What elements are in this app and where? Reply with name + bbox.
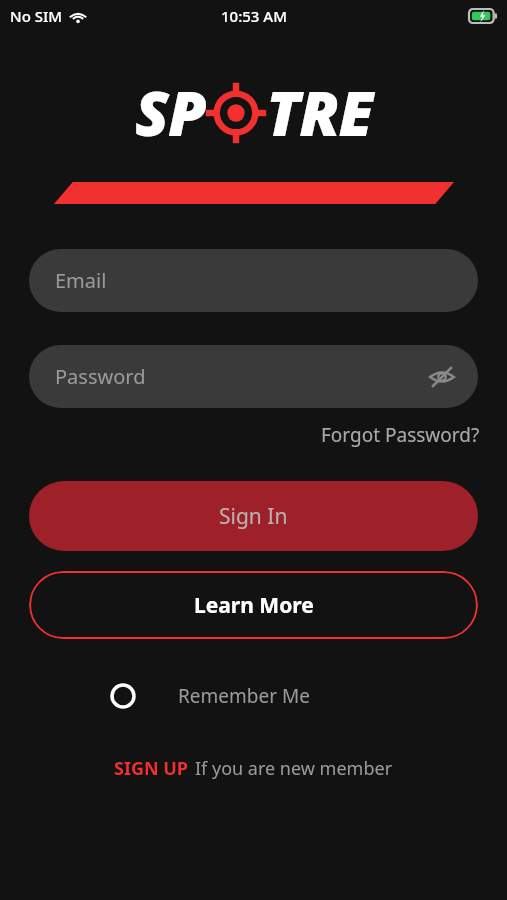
staticText: SIGN UP: [114, 756, 189, 781]
button[interactable]: Forgot Password?: [321, 422, 480, 448]
staticText: Email: [55, 267, 107, 294]
staticText: SP: [135, 70, 206, 154]
button[interactable]: Sign In: [29, 481, 478, 551]
button[interactable]: Show password: [424, 359, 460, 395]
button[interactable]: Learn More: [29, 571, 478, 639]
button[interactable]: Remember Me: [110, 683, 310, 709]
staticText: If you are new member: [195, 756, 393, 781]
staticText: Password: [55, 363, 146, 390]
staticText: Forgot Password?: [321, 422, 480, 448]
button[interactable]: SIGN UP: [0, 756, 507, 781]
staticText: No SIM: [10, 6, 63, 26]
button[interactable]: Email: [29, 249, 478, 312]
staticText: Sign In: [219, 502, 288, 531]
button[interactable]: Password: [29, 345, 478, 408]
staticText: Learn More: [194, 591, 314, 620]
staticText: Remember Me: [178, 683, 310, 709]
staticText: TRE: [266, 70, 373, 154]
staticText: 10:53 AM: [221, 6, 287, 26]
